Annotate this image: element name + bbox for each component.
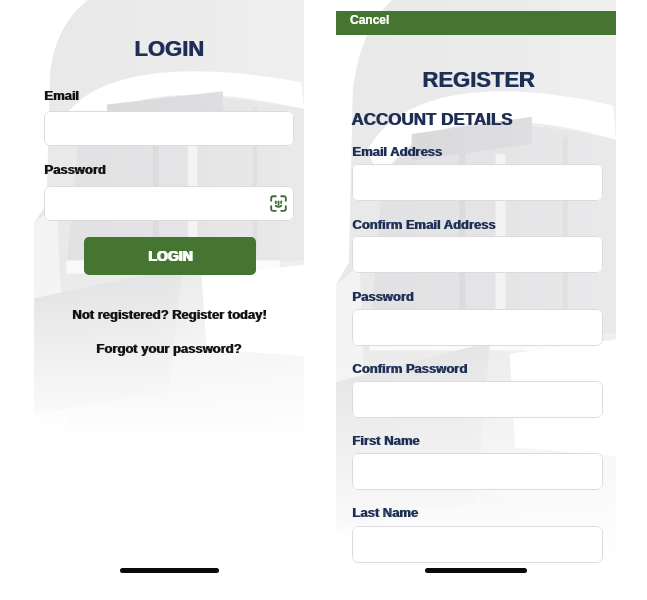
staticText: ACCOUNT DETAILS xyxy=(351,110,513,129)
staticText: LOGIN xyxy=(135,36,205,61)
button[interactable]: Cancel xyxy=(350,10,390,29)
button[interactable]: Forgot your password? xyxy=(90,338,248,359)
staticText: Email Address xyxy=(353,144,443,159)
staticText: Email Address xyxy=(352,144,442,159)
staticText: First Name xyxy=(352,433,420,448)
button[interactable]: Sign in with Face ID xyxy=(44,186,294,221)
button[interactable]: Not registered? Register today! xyxy=(66,304,273,325)
button[interactable] xyxy=(352,453,603,490)
staticText: Confirm Email Address xyxy=(352,217,496,232)
staticText: Password xyxy=(353,289,415,304)
staticText: Last Name xyxy=(352,505,418,520)
staticText: ACCOUNT DETAILS xyxy=(352,110,514,129)
button[interactable]: LOGIN xyxy=(84,237,256,275)
staticText: REGISTER xyxy=(422,67,535,92)
button[interactable] xyxy=(352,236,603,273)
staticText: LOGIN xyxy=(134,36,204,61)
staticText: Confirm Email Address xyxy=(353,217,497,232)
staticText: Confirm Password xyxy=(353,361,468,376)
staticText: First Name xyxy=(353,433,421,448)
staticText: Password xyxy=(44,162,106,177)
button[interactable] xyxy=(44,111,294,146)
staticText: Forgot your password? xyxy=(97,341,243,356)
button[interactable] xyxy=(352,309,603,346)
staticText: Last Name xyxy=(353,505,419,520)
button[interactable] xyxy=(352,381,603,418)
staticText: Password xyxy=(45,162,107,177)
other: Sign in with Face ID xyxy=(270,195,287,212)
staticText: LOGIN xyxy=(149,248,194,264)
button[interactable] xyxy=(352,526,603,563)
staticText: Cancel xyxy=(350,13,390,26)
button[interactable] xyxy=(352,164,603,201)
staticText: REGISTER xyxy=(423,67,536,92)
staticText: LOGIN xyxy=(148,248,193,264)
staticText: Confirm Password xyxy=(352,361,467,376)
staticText: Not registered? Register today! xyxy=(73,307,268,322)
staticText: Password xyxy=(352,289,414,304)
staticText: Email xyxy=(44,88,79,103)
staticText: Not registered? Register today! xyxy=(72,307,267,322)
staticText: Email xyxy=(45,88,80,103)
staticText: Forgot your password? xyxy=(96,341,242,356)
